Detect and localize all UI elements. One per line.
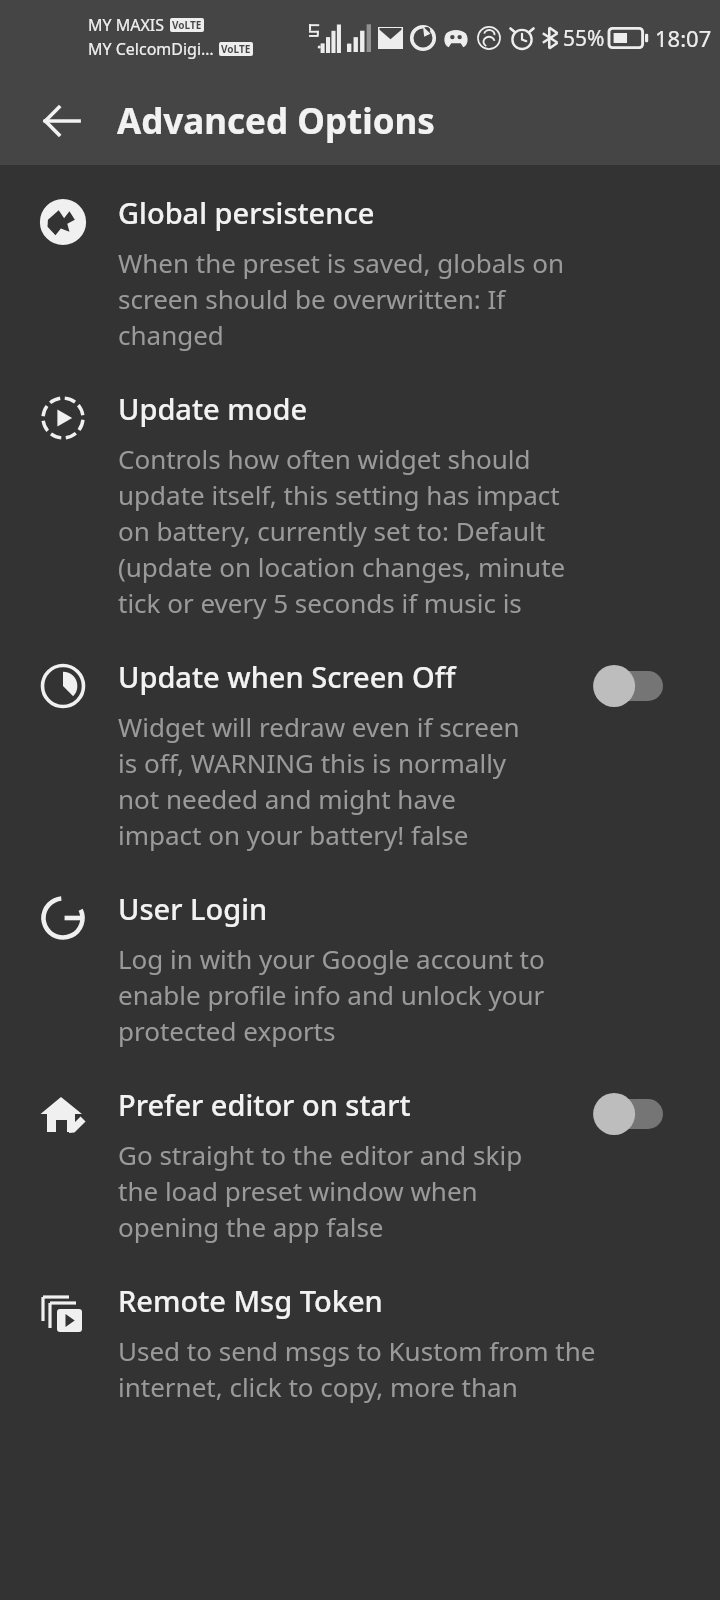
button[interactable]: Update when Screen Off toggle (577, 659, 673, 713)
staticText: Global persistence (118, 193, 375, 232)
staticText: When the preset is saved, globals on scr… (118, 245, 598, 353)
staticText: Go straight to the editor and skip the l… (118, 1137, 530, 1245)
button[interactable]: Prefer editor on start (0, 1049, 720, 1245)
staticText: Widget will redraw even if screen is off… (118, 709, 530, 853)
button[interactable]: Prefer editor on start toggle (577, 1087, 673, 1141)
other: Update when screen off (38, 661, 88, 711)
other: User login (38, 893, 88, 943)
staticText: MY CelcomDigi… (88, 38, 214, 60)
button[interactable]: Update when screen off (0, 621, 720, 853)
staticText: Remote Msg Token (118, 1281, 383, 1320)
staticText: Prefer editor on start (118, 1085, 411, 1124)
button[interactable]: Remote msg token (0, 1245, 720, 1405)
staticText: Update when Screen Off (118, 657, 456, 696)
other: Update mode (38, 393, 88, 443)
staticText: VoLTE (172, 18, 202, 32)
button[interactable]: Back (26, 85, 98, 157)
staticText: Advanced Options (117, 97, 435, 145)
staticText: Update mode (118, 389, 308, 428)
staticText: 55% (563, 24, 605, 53)
other: Remote msg token (38, 1285, 88, 1335)
staticText: Used to send msgs to Kustom from the int… (118, 1333, 598, 1405)
staticText: 18:07 (655, 23, 712, 53)
staticText: Log in with your Google account to enabl… (118, 941, 598, 1049)
button[interactable]: Global persistence (0, 165, 720, 353)
staticText: User Login (118, 889, 268, 928)
other: Global persistence (38, 197, 88, 247)
button[interactable]: Update mode (0, 353, 720, 621)
button[interactable]: User login (0, 853, 720, 1049)
staticText: Controls how often widget should update … (118, 441, 598, 621)
other: Prefer editor on start (38, 1089, 88, 1139)
staticText: MY MAXIS (88, 14, 165, 36)
staticText: VoLTE (221, 42, 251, 56)
